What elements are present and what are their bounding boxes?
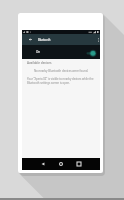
button[interactable]: More options [96,34,100,45]
staticText: Bluetooth [38,38,51,42]
staticText: No nearby Bluetooth devices were found. [26,69,96,73]
staticText: On [36,50,41,54]
staticText: Available devices [27,61,52,65]
button[interactable]: On [22,45,100,59]
staticText: Your “Xperia XZ” is visible to nearby de… [27,77,95,85]
button[interactable]: Navigate up [22,34,38,45]
button[interactable]: Back [38,158,48,170]
button[interactable]: Recent apps [74,158,84,170]
button[interactable]: Home [56,158,66,170]
